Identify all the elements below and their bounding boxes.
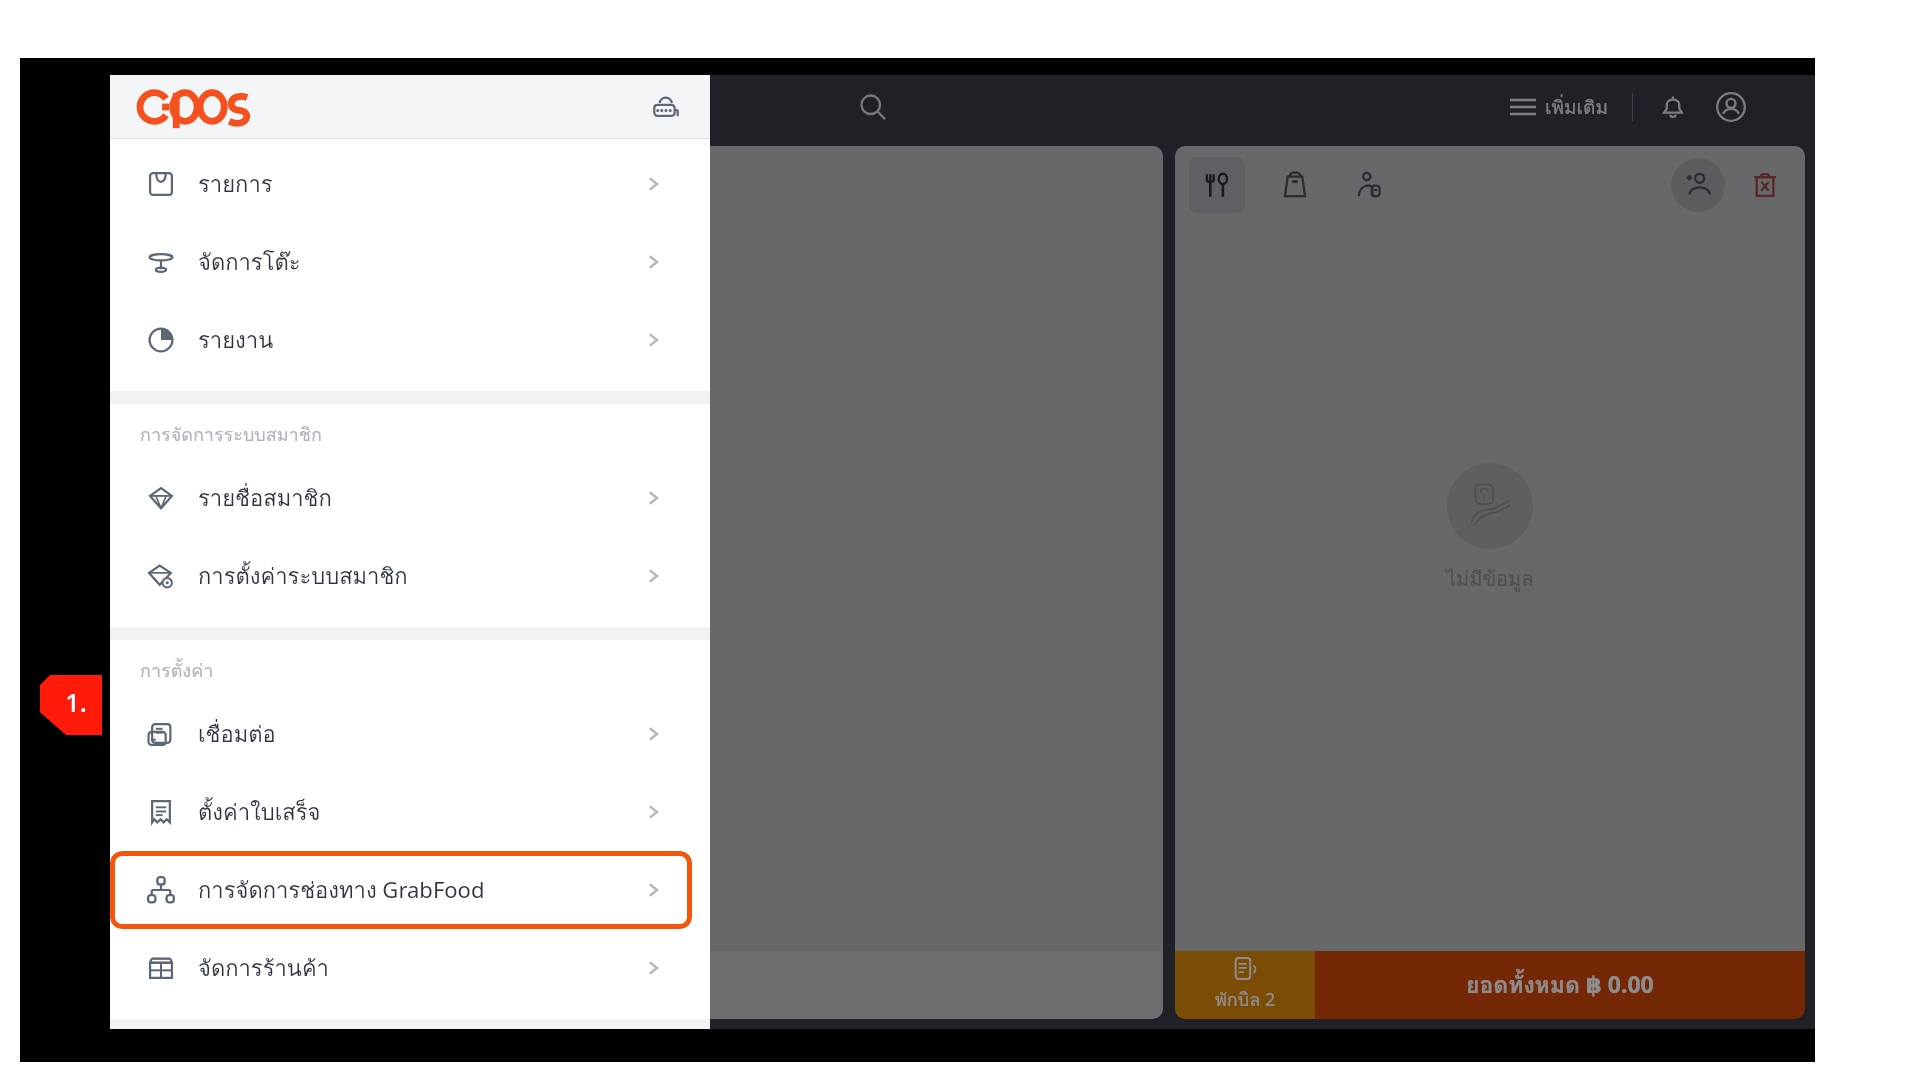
button[interactable]: Lock register: [644, 85, 688, 129]
button[interactable]: ม่อน โซดา emon Soda: [124, 357, 320, 559]
button[interactable]: Search: [850, 84, 896, 130]
staticText: 1.: [65, 684, 87, 719]
button[interactable]: กเบอร์รี่ โซดา Mixed Berry S...: [124, 564, 320, 766]
staticText: ม่อน โซดา emon Soda: [133, 458, 314, 518]
staticText: รายการ: [198, 167, 273, 202]
button[interactable]: จัดการโต๊ะ: [110, 223, 710, 301]
staticText: เชื่อมต่อ: [198, 717, 276, 752]
staticText: รายงาน: [198, 323, 274, 358]
button[interactable]: Add customer: [1671, 158, 1725, 212]
button[interactable]: ส่วนลด/คูปอง: [120, 951, 1163, 1019]
staticText: ไม่มีข้อมูล: [1446, 563, 1534, 595]
staticText: กเบอร์รี่ โซดา Mixed Berry S...: [133, 665, 314, 725]
staticText: จัดการโต๊ะ: [198, 245, 301, 280]
button[interactable]: Clear order: [1739, 159, 1791, 211]
staticText: รายชื่อสมาชิก: [198, 481, 332, 516]
button[interactable]: พักบิล 2: [1175, 951, 1315, 1019]
staticText: 45.00/แก้ว: [133, 728, 224, 758]
button[interactable]: สมูทตี้ ส้ม Apple Smoothie: [326, 564, 522, 766]
button[interactable]: ตั้งค่าใบเสร็จ: [110, 773, 710, 851]
button[interactable]: Dine in: [1189, 157, 1245, 213]
button[interactable]: เชื่อมต่อ: [110, 695, 710, 773]
staticText: พักบิล 2: [1215, 985, 1276, 1014]
button[interactable]: [124, 771, 320, 951]
staticText: 50.00/แก้ว: [133, 314, 224, 344]
staticText: ส่วนลด/คูปอง: [580, 969, 704, 1002]
staticText: การจัดการระบบสมาชิก: [140, 420, 322, 449]
staticText: การจัดการช่องทาง GrabFood: [198, 873, 485, 908]
button[interactable]: Account: [1709, 85, 1753, 129]
staticText: การตั้งค่า: [140, 656, 214, 685]
button[interactable]: การตั้งค่าระบบสมาชิก: [110, 537, 710, 615]
button[interactable]: การจัดการช่องทาง GrabFood: [110, 851, 692, 929]
staticText: เพิ่มเติม: [1545, 92, 1608, 122]
button[interactable]: เพิ่มเติม: [1504, 86, 1614, 128]
staticText: จัดการร้านค้า: [198, 951, 329, 986]
button[interactable]: ยอดทั้งหมด ฿ 0.00: [1315, 951, 1805, 1019]
button[interactable]: รายชื่อสมาชิก: [110, 459, 710, 537]
button[interactable]: มสด fresh milk: [124, 150, 320, 352]
button[interactable]: รายการ: [110, 145, 710, 223]
button[interactable]: จัดการร้านค้า: [110, 929, 710, 1007]
button[interactable]: Notifications: [1651, 85, 1695, 129]
button[interactable]: ลิ้นจี่ โซดา Lychee Soda: [326, 357, 522, 559]
button[interactable]: Take away: [1267, 157, 1323, 213]
staticText: ยอดทั้งหมด ฿ 0.00: [1466, 967, 1654, 1004]
button[interactable]: Delivery: [1341, 157, 1397, 213]
button[interactable]: รายงาน: [110, 301, 710, 379]
staticText: การตั้งค่าระบบสมาชิก: [198, 559, 408, 594]
button[interactable]: [326, 771, 522, 951]
staticText: ตั้งค่าใบเสร็จ: [198, 795, 321, 830]
